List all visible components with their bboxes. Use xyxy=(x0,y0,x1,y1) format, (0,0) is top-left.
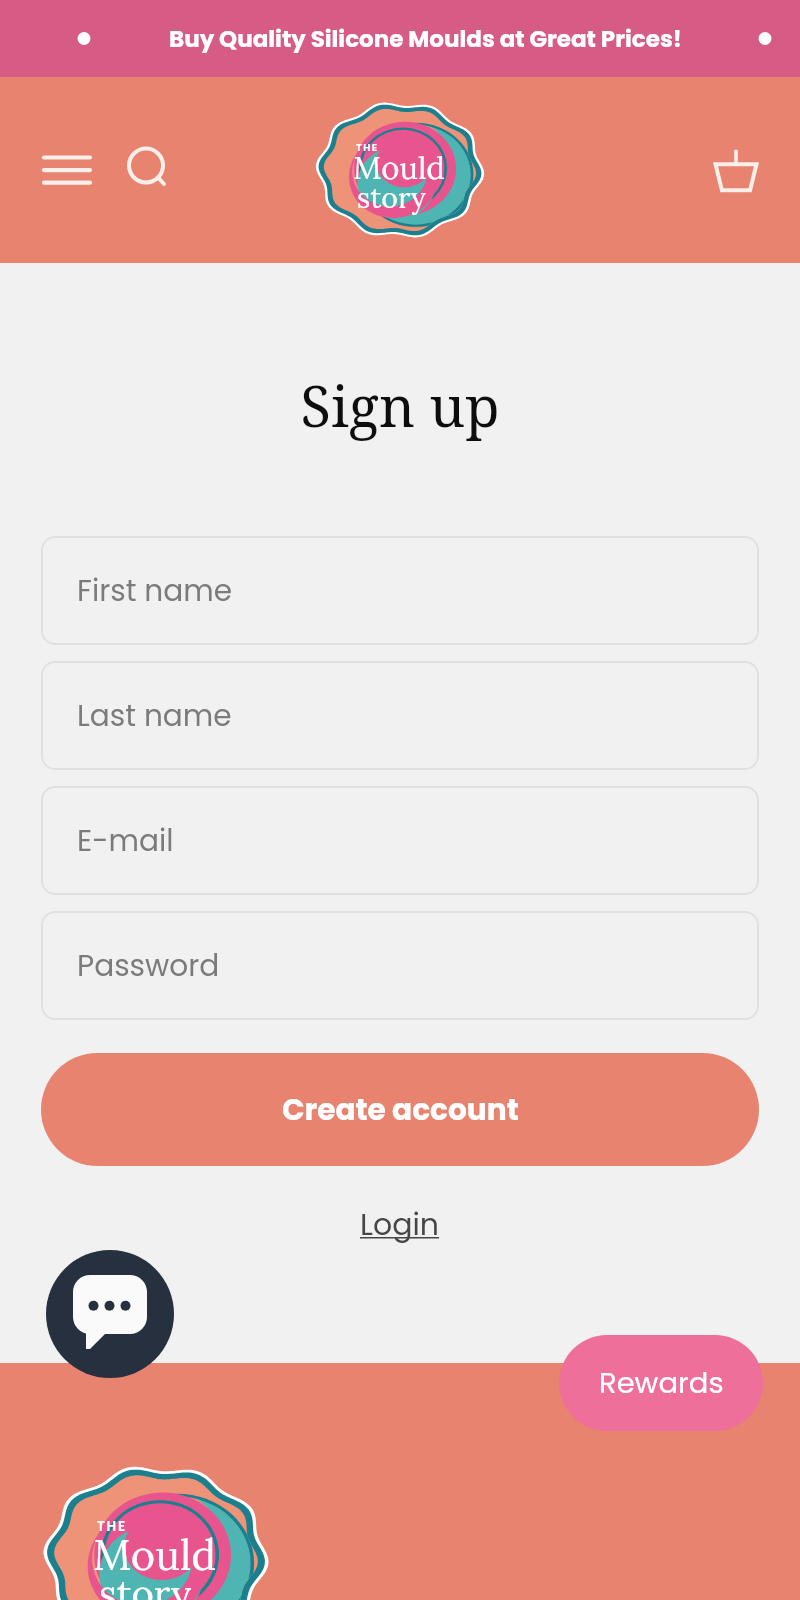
staticText: Sign up xyxy=(0,367,800,443)
staticText: Mould xyxy=(353,148,445,188)
staticText: First name xyxy=(77,570,233,611)
button[interactable]: Create account xyxy=(41,1053,759,1166)
button[interactable]: Login xyxy=(354,1198,446,1252)
staticText: Buy Quality Silicone Moulds at Great Pri… xyxy=(169,23,682,55)
button[interactable]: The Mould Story xyxy=(45,1466,267,1600)
staticText: THE xyxy=(97,1517,128,1536)
staticText: Login xyxy=(360,1204,440,1246)
button[interactable]: E-mail xyxy=(41,786,759,895)
button[interactable]: Chat xyxy=(46,1250,174,1378)
button[interactable]: The Mould Story home xyxy=(317,102,483,238)
staticText: Create account xyxy=(282,1089,519,1130)
button[interactable]: Menu xyxy=(31,134,103,206)
staticText: Rewards xyxy=(599,1363,724,1404)
button[interactable]: Rewards xyxy=(559,1335,763,1431)
staticText: story xyxy=(99,1569,192,1600)
button[interactable]: Search xyxy=(113,134,185,206)
staticText: Last name xyxy=(77,695,232,736)
staticText: THE xyxy=(356,140,379,154)
staticText: Mould xyxy=(93,1528,217,1581)
staticText: E-mail xyxy=(77,820,174,861)
button[interactable]: First name xyxy=(41,536,759,645)
button[interactable]: Last name xyxy=(41,661,759,770)
button[interactable]: Cart xyxy=(700,134,772,206)
staticText: story xyxy=(357,179,426,215)
button[interactable]: Password xyxy=(41,911,759,1020)
staticText: Password xyxy=(77,945,220,986)
